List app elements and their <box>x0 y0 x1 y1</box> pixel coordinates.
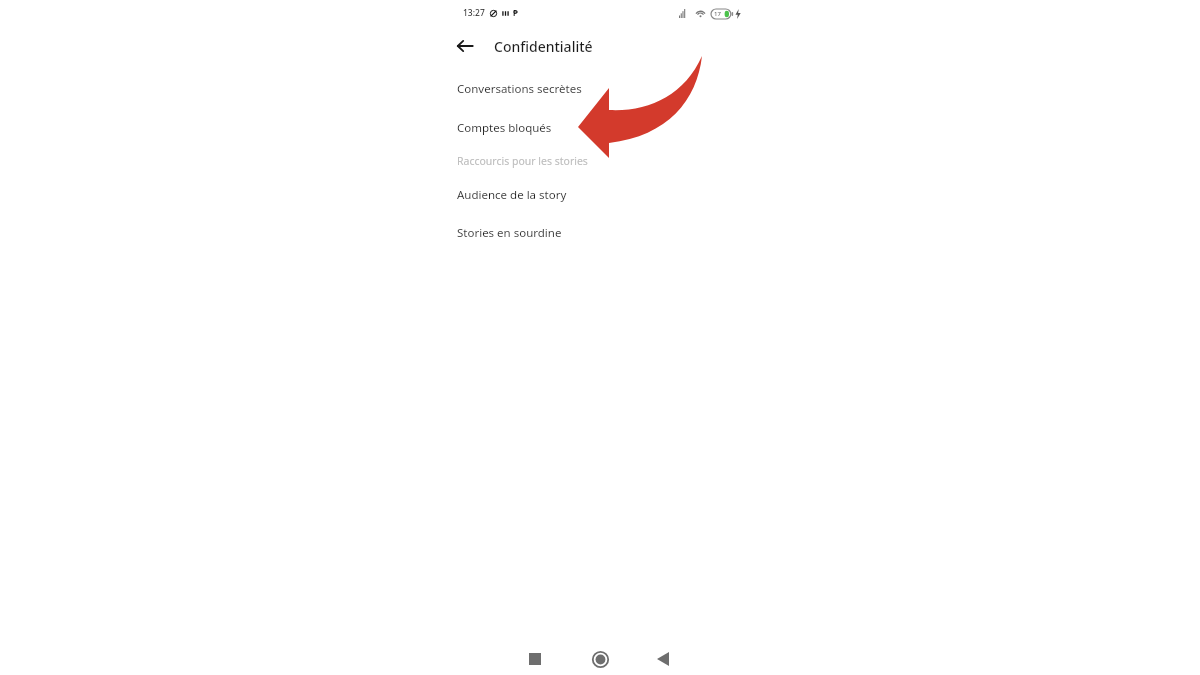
staticText: Conversations secrètes <box>457 81 582 97</box>
staticText: 13:27 <box>463 7 485 19</box>
button[interactable]: Raccourcis pour les stories <box>440 150 700 172</box>
staticText: Audience de la story <box>457 187 567 203</box>
staticText: Stories en sourdine <box>457 225 562 241</box>
staticText: ₱ <box>513 7 518 19</box>
button[interactable]: Back <box>450 31 480 61</box>
staticText: 17 <box>714 10 721 18</box>
button[interactable]: Stories en sourdine <box>440 222 700 244</box>
button[interactable]: Audience de la story <box>440 184 700 206</box>
button[interactable]: Back <box>645 641 681 675</box>
button[interactable]: Comptes bloqués <box>440 117 700 139</box>
staticText: Comptes bloqués <box>457 120 552 136</box>
staticText: Raccourcis pour les stories <box>457 154 588 168</box>
staticText: Confidentialité <box>494 37 593 56</box>
button[interactable]: Recent apps <box>517 641 553 675</box>
button[interactable]: Home <box>582 641 618 675</box>
button[interactable]: Conversations secrètes <box>440 78 700 100</box>
